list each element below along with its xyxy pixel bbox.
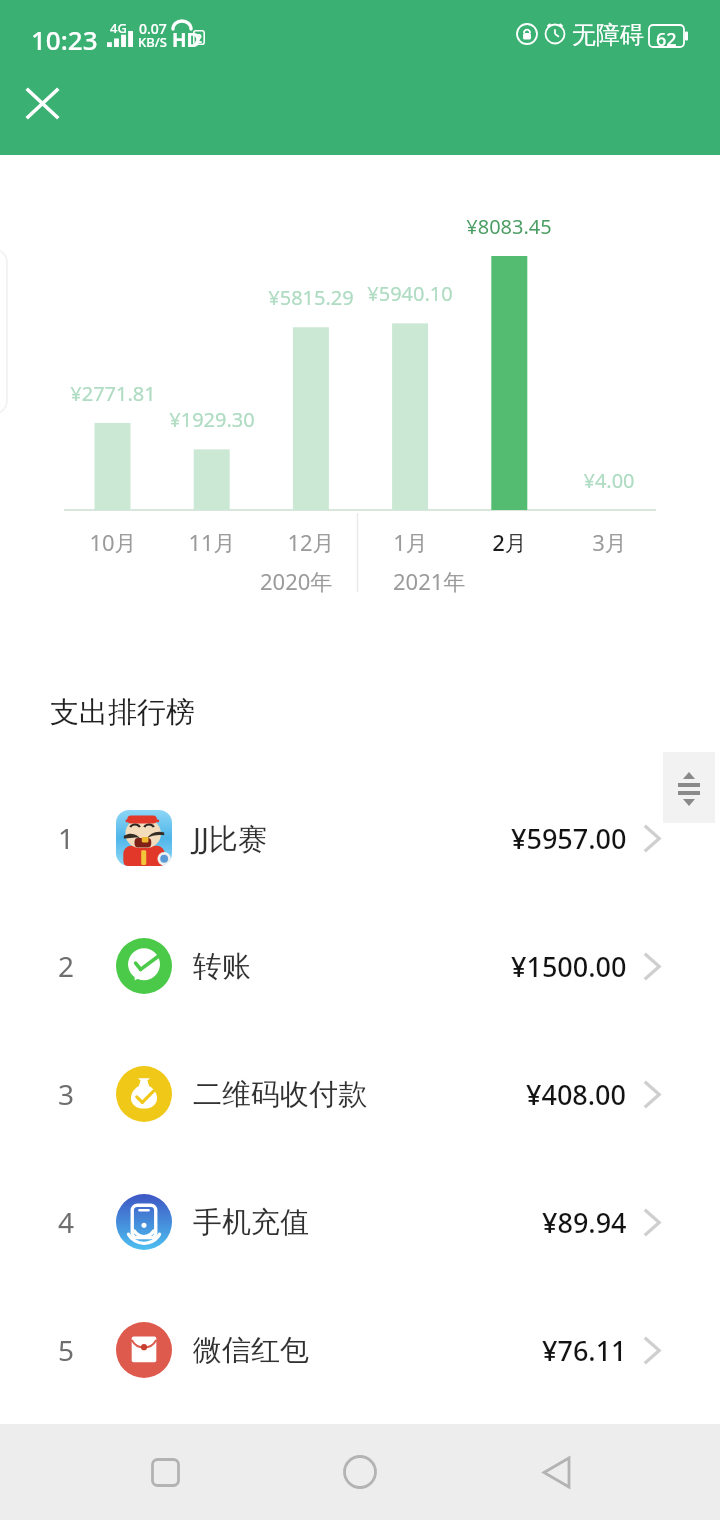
staticText: 2月 [492,527,527,557]
staticText: JJ比赛 [193,818,267,858]
staticText: 手机充值 [193,1204,309,1241]
button[interactable]: Close [13,74,71,132]
staticText: 3月 [592,527,627,557]
staticText: ¥1500.00 [511,948,627,985]
staticText: ¥2771.81 [70,380,156,407]
staticText: 1月 [393,527,428,557]
staticText: 3 [58,1075,75,1113]
staticText: ¥4.00 [583,467,635,494]
staticText: 5 [58,1331,75,1369]
staticText: 2020年 [260,566,333,596]
staticText: 支出排行榜 [50,694,195,731]
staticText: 10:23 [31,22,98,57]
button[interactable]: Scroll [663,752,715,823]
staticText: 62 [656,27,677,52]
staticText: 2 [58,947,75,985]
button[interactable]: 2 [0,902,720,1030]
staticText: ¥1929.30 [169,406,255,433]
button[interactable]: 1 [0,774,720,902]
button[interactable]: 5 [0,1286,720,1414]
staticText: 12月 [287,527,335,557]
staticText: ¥8083.45 [466,213,552,240]
staticText: 二维码收付款 [193,1076,367,1113]
button[interactable]: 3 [0,1030,720,1158]
staticText: 11月 [188,527,236,557]
staticText: 2021年 [393,566,466,596]
staticText: HD [172,27,201,53]
staticText: 4 [58,1203,75,1241]
staticText: 0.07 [139,19,167,38]
button[interactable]: Back [501,1424,611,1520]
button[interactable]: Home [305,1424,415,1520]
staticText: 1 [58,819,75,857]
staticText: 4G [110,19,127,37]
staticText: ¥76.11 [542,1332,627,1369]
button[interactable]: 4 [0,1158,720,1286]
staticText: ¥5940.10 [367,280,453,307]
staticText: 微信红包 [193,1332,309,1369]
staticText: 转账 [193,948,251,985]
staticText: 无障碍 [572,20,644,50]
staticText: ¥89.94 [542,1204,627,1241]
staticText: ¥408.00 [526,1076,627,1113]
staticText: ¥5815.29 [268,284,354,311]
button[interactable]: Recents [110,1424,220,1520]
staticText: 2 [195,30,202,46]
staticText: ¥5957.00 [511,820,627,857]
staticText: KB/S [138,33,167,51]
staticText: 10月 [89,527,137,557]
